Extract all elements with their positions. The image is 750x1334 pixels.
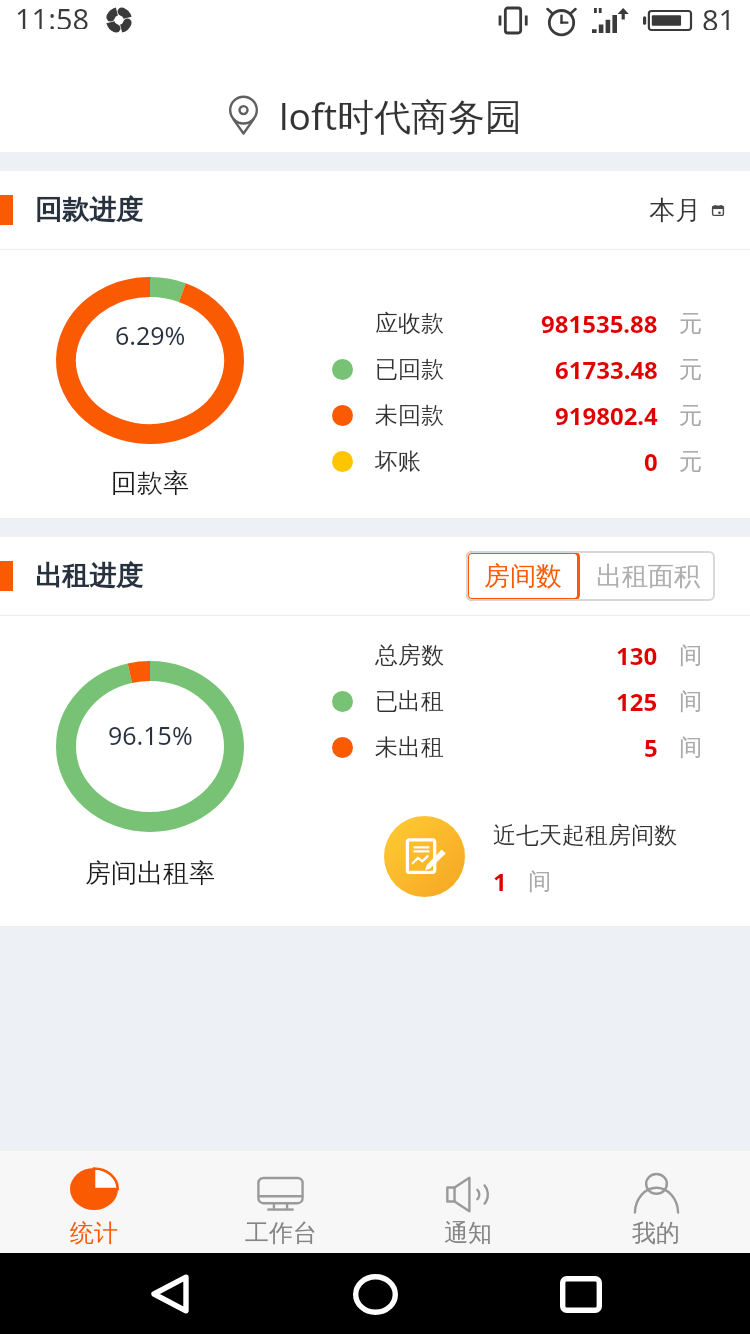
staticText: 0 [644, 445, 658, 478]
button[interactable]: 本月 [629, 184, 750, 237]
staticText: 间 [528, 867, 551, 896]
staticText: loft时代商务园 [279, 90, 523, 141]
staticText: 总房数 [375, 641, 444, 670]
staticText: 61733.48 [555, 353, 658, 386]
staticText: 125 [616, 685, 658, 718]
staticText: 统计 [70, 1218, 118, 1248]
staticText: 应收款 [375, 309, 444, 338]
staticText: 工作台 [245, 1218, 317, 1248]
staticText: 919802.4 [555, 399, 658, 432]
staticText: 通知 [444, 1218, 492, 1248]
staticText: 未回款 [375, 401, 444, 430]
staticText: 981535.88 [541, 307, 658, 340]
staticText: 本月 [649, 194, 701, 227]
staticText: 130 [616, 639, 658, 672]
staticText: 坏账 [375, 447, 421, 476]
button[interactable]: Home [339, 1258, 411, 1330]
staticText: 房间出租率 [85, 857, 215, 890]
button[interactable]: 通知 [374, 1151, 562, 1253]
staticText: 元 [679, 447, 702, 476]
staticText: 回款率 [111, 467, 189, 500]
staticText: 出租进度 [35, 559, 143, 593]
staticText: 间 [679, 641, 702, 670]
staticText: 间 [679, 733, 702, 762]
button[interactable]: 近七天起租房间数 [384, 816, 465, 897]
staticText: 96.15% [108, 718, 193, 752]
staticText: 已出租 [375, 687, 444, 716]
staticText: 未出租 [375, 733, 444, 762]
staticText: 回款进度 [35, 193, 143, 227]
staticText: 6.29% [115, 318, 186, 352]
button[interactable]: 房间数 [466, 551, 580, 601]
staticText: 出租面积 [596, 560, 700, 593]
staticText: 间 [679, 687, 702, 716]
button[interactable]: 统计 [0, 1151, 187, 1253]
staticText: 1 [493, 865, 507, 898]
staticText: 元 [679, 309, 702, 338]
button[interactable]: Back [134, 1258, 206, 1330]
staticText: 近七天起租房间数 [493, 821, 677, 850]
staticText: 元 [679, 355, 702, 384]
staticText: 5 [644, 731, 658, 764]
staticText: 我的 [632, 1218, 680, 1248]
button[interactable]: 工作台 [187, 1151, 374, 1253]
staticText: 已回款 [375, 355, 444, 384]
staticText: 元 [679, 401, 702, 430]
staticText: 房间数 [484, 560, 562, 593]
button[interactable]: 我的 [562, 1151, 750, 1253]
staticText: 11:58 [15, 0, 90, 29]
staticText: 81 [702, 0, 736, 30]
button[interactable]: 出租面积 [580, 551, 715, 601]
button[interactable]: Recents [545, 1258, 617, 1330]
